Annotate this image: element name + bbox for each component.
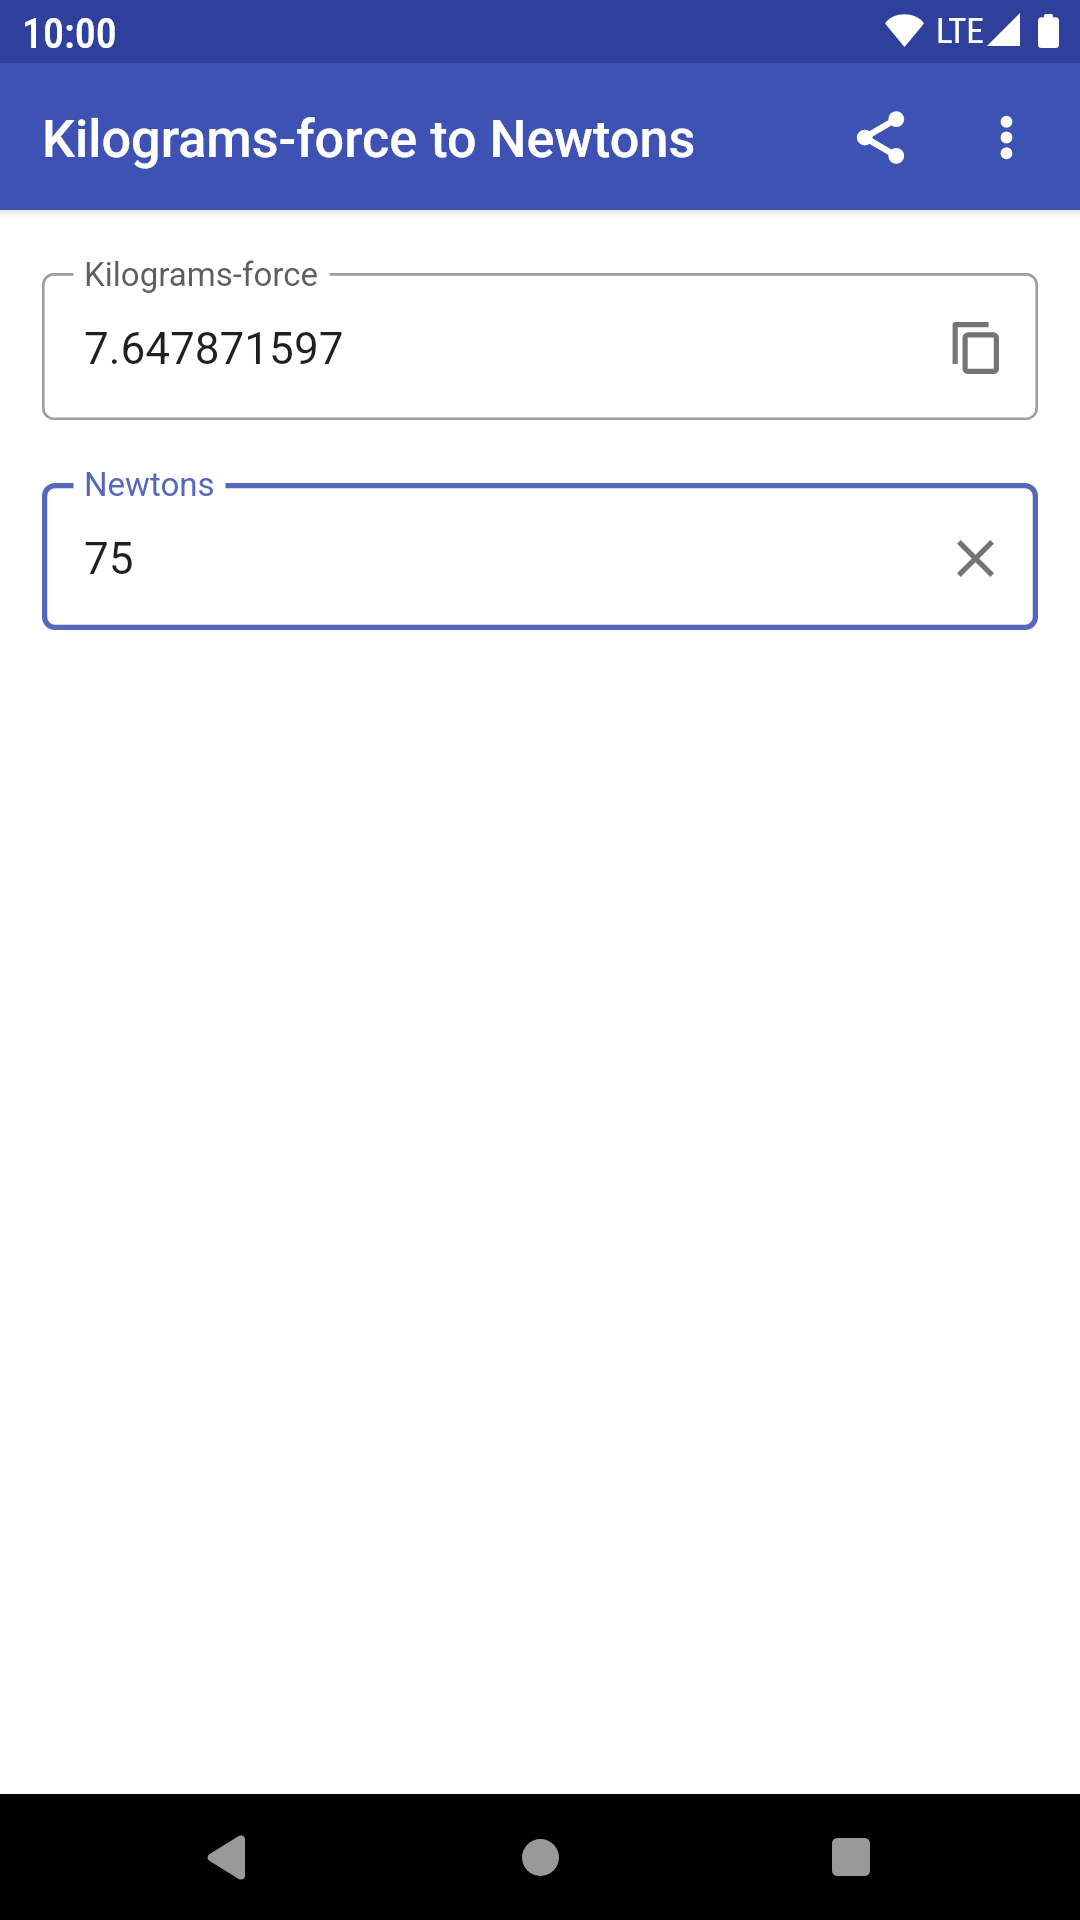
button[interactable]: Back xyxy=(162,1794,288,1920)
button[interactable]: Clear xyxy=(912,494,1038,620)
staticText: 10:00 xyxy=(22,9,117,58)
staticText: Kilograms-force xyxy=(84,255,319,294)
staticText: Newtons xyxy=(84,465,215,504)
button[interactable]: Recents xyxy=(788,1794,914,1920)
button[interactable]: Copy xyxy=(912,284,1038,410)
button[interactable]: Home xyxy=(477,1794,603,1920)
staticText: 75 xyxy=(84,533,134,585)
staticText: Kilograms-force to Newtons xyxy=(42,109,696,170)
button[interactable]: Share xyxy=(817,74,943,200)
button[interactable]: 75 xyxy=(42,483,1038,630)
staticText: LTE xyxy=(936,10,984,51)
button[interactable]: 7.647871597 xyxy=(42,273,1038,420)
button[interactable]: More options xyxy=(943,74,1069,200)
staticText: 7.647871597 xyxy=(84,323,344,375)
